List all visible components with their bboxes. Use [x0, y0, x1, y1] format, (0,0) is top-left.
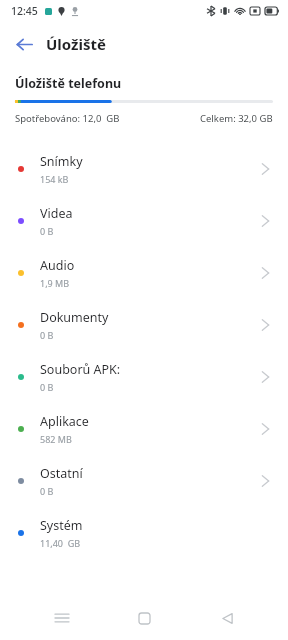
staticText: 0 B: [40, 329, 54, 341]
staticText: 582 MB: [40, 433, 72, 445]
staticText: Systém: [40, 517, 83, 534]
staticText: Úložiště telefonu: [15, 75, 122, 92]
staticText: 0 B: [40, 225, 54, 237]
button[interactable]: Souborů APK:: [0, 351, 288, 403]
button[interactable]: Videa: [0, 195, 288, 247]
staticText: Spotřebováno: 12,0 GB: [15, 112, 120, 125]
staticText: 12:45: [11, 4, 38, 18]
staticText: Dokumenty: [40, 309, 109, 326]
button[interactable]: Snímky: [0, 143, 288, 195]
staticText: 1,9 MB: [40, 277, 70, 289]
button[interactable]: Audio: [0, 247, 288, 299]
staticText: Úložiště: [46, 34, 106, 54]
staticText: Audio: [40, 257, 75, 274]
staticText: Souborů APK:: [40, 361, 121, 378]
staticText: Celkem: 32,0 GB: [200, 112, 273, 125]
button[interactable]: Ostatní: [0, 455, 288, 507]
staticText: 154 kB: [40, 173, 69, 185]
staticText: Videa: [40, 205, 73, 222]
button[interactable]: Systém: [0, 507, 288, 559]
staticText: Aplikace: [40, 413, 89, 430]
staticText: Ostatní: [40, 465, 83, 482]
staticText: Snímky: [40, 153, 83, 170]
button[interactable]: Back: [206, 597, 248, 639]
button[interactable]: Back: [8, 28, 40, 60]
staticText: 0 B: [40, 381, 54, 393]
staticText: 0 B: [40, 485, 54, 497]
button[interactable]: Recent apps: [41, 597, 83, 639]
button[interactable]: Dokumenty: [0, 299, 288, 351]
staticText: 11,40 GB: [40, 537, 81, 549]
button[interactable]: Home: [123, 597, 165, 639]
button[interactable]: Aplikace: [0, 403, 288, 455]
